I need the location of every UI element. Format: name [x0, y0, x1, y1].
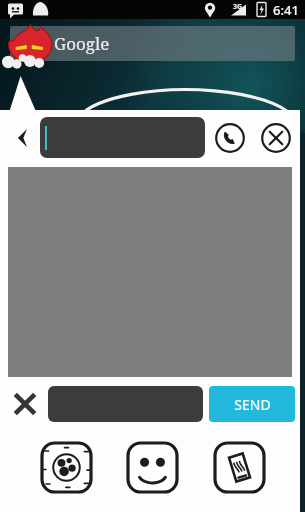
staticText: 3G [233, 2, 243, 12]
button[interactable]: Vibrate [213, 441, 266, 494]
button[interactable]: Back [10, 125, 36, 151]
button[interactable] [40, 117, 205, 158]
button[interactable]: Call [215, 123, 245, 153]
button[interactable]: Close [261, 123, 291, 153]
button[interactable]: SEND [209, 386, 295, 422]
button[interactable] [48, 386, 203, 422]
button[interactable]: Emoji [126, 441, 179, 494]
button[interactable]: Web [40, 441, 93, 494]
staticText: 6:41 [273, 1, 299, 19]
button[interactable]: Clear [8, 387, 42, 421]
staticText: Google [54, 32, 110, 55]
other: Mascot [2, 24, 64, 74]
button[interactable]: Google [10, 26, 295, 61]
staticText: SEND [234, 395, 271, 414]
